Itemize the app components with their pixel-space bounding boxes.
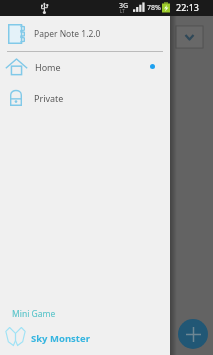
staticText: 3G (119, 1, 129, 11)
button[interactable]: Private (0, 81, 170, 114)
staticText: Private (34, 92, 64, 104)
button[interactable]: Sky Monster (0, 327, 170, 349)
button[interactable]: Home (0, 52, 170, 81)
staticText: Paper Note 1.2.0 (34, 28, 101, 40)
button[interactable]: Add note (178, 319, 208, 349)
button[interactable]: Select notebook (176, 26, 203, 48)
staticText: Home (35, 61, 61, 73)
staticText: LT (120, 8, 125, 14)
staticText: 22:13 (176, 1, 200, 13)
staticText: Sky Monster (31, 332, 90, 345)
staticText: Mini Game (12, 308, 56, 320)
button[interactable]: Paper Note 1.2.0 (0, 16, 170, 51)
staticText: 78% (147, 3, 161, 13)
